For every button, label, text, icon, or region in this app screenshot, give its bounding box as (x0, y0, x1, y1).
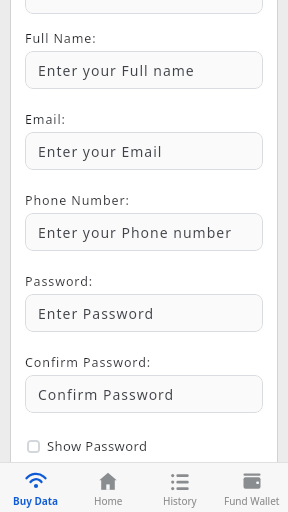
staticText: Email: (25, 111, 66, 128)
staticText: Confirm Password: (25, 354, 152, 371)
staticText: Enter your Email (38, 142, 163, 161)
button[interactable] (25, 0, 263, 14)
staticText: Confirm Password (38, 385, 175, 404)
staticText: Buy Data (13, 494, 59, 508)
staticText: Phone Number: (25, 192, 130, 209)
staticText: Enter your Phone number (38, 223, 232, 242)
button[interactable]: Fund Wallet (216, 462, 288, 512)
button[interactable]: Show Password (27, 437, 148, 455)
button[interactable]: Confirm Password (25, 375, 263, 413)
button[interactable]: Enter your Phone number (25, 213, 263, 251)
staticText: Full Name: (25, 30, 97, 47)
button[interactable]: Enter your Email (25, 132, 263, 170)
button[interactable]: Enter your Full name (25, 51, 263, 89)
button[interactable]: Home (72, 462, 144, 512)
staticText: Password: (25, 273, 93, 290)
staticText: History (163, 494, 197, 508)
staticText: Fund Wallet (224, 494, 280, 508)
staticText: Enter Password (38, 304, 155, 323)
button[interactable]: Buy Data (0, 462, 72, 512)
staticText: Enter your Full name (38, 61, 195, 80)
button[interactable]: Enter Password (25, 294, 263, 332)
staticText: Home (94, 494, 123, 508)
staticText: Show Password (47, 437, 148, 455)
button[interactable]: History (144, 462, 216, 512)
